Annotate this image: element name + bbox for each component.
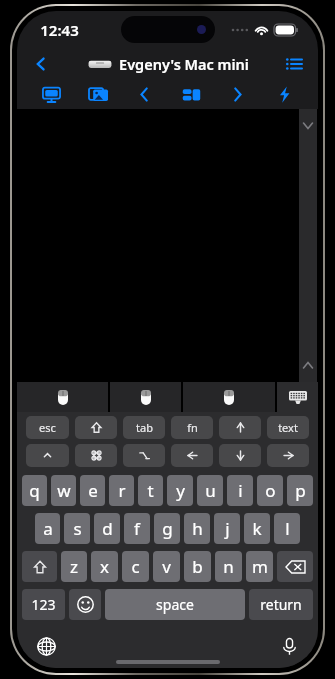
button[interactable]: opt (123, 444, 165, 467)
button[interactable]: Windows (169, 80, 213, 108)
staticText: 123 (31, 595, 56, 614)
button[interactable]: fn (171, 416, 213, 439)
staticText: t (147, 479, 154, 502)
button[interactable]: z (61, 551, 87, 582)
staticText: o (265, 479, 276, 502)
button[interactable]: Actions (262, 80, 306, 108)
button[interactable]: s (64, 513, 90, 544)
button[interactable]: Backspace (277, 551, 313, 582)
staticText: i (238, 479, 243, 502)
button[interactable]: Scroll (299, 109, 317, 382)
button[interactable]: g (154, 513, 180, 544)
staticText: v (162, 555, 171, 578)
button[interactable]: c (122, 551, 149, 582)
button[interactable]: Middle click (110, 382, 181, 412)
button[interactable]: x (91, 551, 118, 582)
button[interactable]: Previous (122, 80, 166, 108)
button[interactable]: Next (215, 80, 259, 108)
button[interactable]: l (274, 513, 300, 544)
button[interactable]: p (287, 475, 313, 506)
button[interactable]: k (244, 513, 270, 544)
button[interactable]: b (184, 551, 211, 582)
button[interactable]: space (105, 589, 245, 620)
button[interactable]: d (94, 513, 120, 544)
staticText: 12:43 (40, 20, 79, 40)
staticText: n (223, 555, 234, 578)
button[interactable]: e (80, 475, 105, 506)
button[interactable]: Shift (22, 551, 57, 582)
button[interactable]: return (249, 589, 313, 620)
button[interactable]: down (219, 444, 261, 467)
staticText: e (88, 479, 98, 502)
button[interactable]: h (184, 513, 210, 544)
button[interactable]: f (124, 513, 150, 544)
button[interactable]: a (35, 513, 60, 544)
button[interactable]: left (171, 444, 213, 467)
button[interactable]: esc (26, 416, 69, 439)
staticText: k (252, 517, 262, 540)
staticText: c (131, 555, 140, 578)
button[interactable]: t (138, 475, 163, 506)
staticText: fn (187, 420, 198, 435)
button[interactable]: Right click (183, 382, 275, 412)
button[interactable]: shiftup (75, 416, 117, 439)
button[interactable]: i (227, 475, 253, 506)
button[interactable]: q (22, 475, 47, 506)
button[interactable]: up (219, 416, 261, 439)
button[interactable]: Emoji (69, 589, 101, 620)
button[interactable]: Dictation (274, 631, 304, 661)
button[interactable]: ctrl (26, 444, 69, 467)
button[interactable]: 123 (22, 589, 65, 620)
staticText: m (252, 555, 268, 578)
staticText: r (118, 479, 126, 502)
staticText: a (43, 517, 53, 540)
staticText: u (205, 479, 216, 502)
button[interactable]: o (257, 475, 283, 506)
staticText: p (295, 479, 306, 502)
staticText: d (102, 517, 113, 540)
staticText: s (73, 517, 82, 540)
button[interactable]: Back (27, 50, 55, 78)
button[interactable]: r (109, 475, 134, 506)
button[interactable]: right (267, 444, 309, 467)
staticText: esc (39, 420, 56, 435)
staticText: b (192, 555, 203, 578)
staticText: space (156, 595, 194, 614)
staticText: return (260, 595, 302, 614)
staticText: f (134, 517, 140, 540)
button[interactable]: v (153, 551, 180, 582)
button[interactable]: y (167, 475, 193, 506)
button[interactable]: cmd (75, 444, 117, 467)
staticText: h (192, 517, 203, 540)
button[interactable]: List (280, 50, 308, 78)
button[interactable]: u (197, 475, 223, 506)
staticText: q (29, 479, 40, 502)
button[interactable]: text (267, 416, 309, 439)
staticText: g (162, 517, 173, 540)
staticText: text (278, 420, 298, 435)
staticText: x (100, 555, 109, 578)
button[interactable]: Left click (17, 382, 108, 412)
button[interactable]: j (214, 513, 240, 544)
staticText: l (285, 517, 290, 540)
staticText: z (70, 555, 78, 578)
button[interactable]: m (246, 551, 273, 582)
button[interactable]: n (215, 551, 242, 582)
staticText: j (225, 517, 230, 540)
button[interactable]: Change keyboard (31, 631, 61, 661)
staticText: Evgeny's Mac mini (119, 54, 249, 74)
staticText: w (57, 479, 71, 502)
staticText: tab (136, 420, 153, 435)
button[interactable]: Keyboard (277, 382, 318, 412)
button[interactable]: Screens (76, 80, 120, 108)
button[interactable]: w (51, 475, 76, 506)
button[interactable]: Display (29, 80, 73, 108)
staticText: y (176, 479, 185, 502)
button[interactable]: tab (123, 416, 165, 439)
